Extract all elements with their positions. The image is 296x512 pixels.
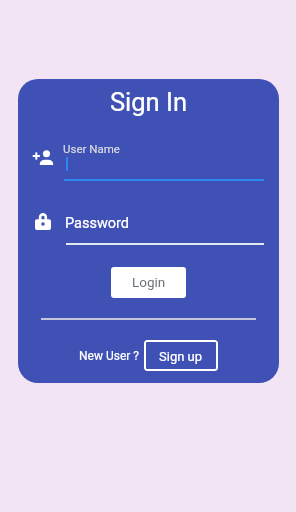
staticText: User Name (63, 142, 120, 155)
staticText: New User ? (79, 349, 139, 363)
button[interactable]: Sign up (144, 340, 218, 371)
other: User name (33, 150, 53, 165)
staticText: Sign In (18, 87, 279, 117)
other: Password (35, 212, 51, 230)
staticText: Sign up (159, 349, 203, 364)
button[interactable]: Login (111, 267, 186, 298)
staticText: Password (65, 215, 130, 232)
staticText: Login (132, 274, 166, 290)
